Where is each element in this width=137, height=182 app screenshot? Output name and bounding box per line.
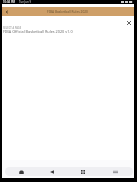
button[interactable]: Nav	[79, 168, 87, 176]
button[interactable]: Nav	[17, 168, 25, 176]
staticText: Tue Jun 9	[19, 0, 31, 4]
button[interactable]: Back	[2, 7, 11, 16]
staticText: 10:04 PM	[3, 0, 16, 4]
staticText: FIBA Official Basketball Rules 2020 v1.0	[3, 29, 73, 34]
staticText: FIBA Basketball Rules 2020	[47, 10, 88, 14]
button[interactable]: Nav	[111, 168, 119, 176]
button[interactable]: Close	[125, 19, 132, 26]
staticText: SELECT A PAGE	[3, 26, 22, 30]
button[interactable]: Nav	[48, 168, 56, 176]
